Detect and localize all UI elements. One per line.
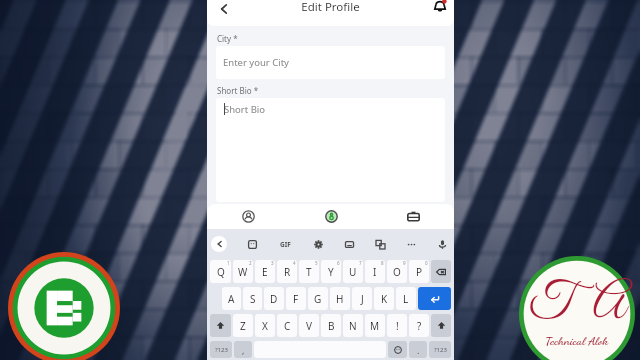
button[interactable]: C (277, 314, 297, 337)
button[interactable]: A (222, 287, 241, 310)
staticText: H (336, 292, 344, 306)
staticText: 5 (315, 260, 318, 266)
button[interactable]: Notifications (431, 0, 449, 15)
button[interactable]: Backspace (431, 260, 451, 283)
button[interactable]: Close toolbar (211, 236, 227, 252)
button[interactable]: U (343, 260, 363, 283)
button[interactable]: Back (214, 0, 232, 18)
staticText: 4 (293, 260, 296, 266)
button[interactable]: Enter your City (216, 46, 445, 79)
button[interactable]: Translate (373, 237, 387, 251)
staticText: Short Bio * (217, 85, 259, 96)
button[interactable]: Clipboard (342, 237, 356, 251)
staticText: 9 (403, 260, 406, 266)
button[interactable]: P (409, 260, 429, 283)
button[interactable]: I (365, 260, 385, 283)
button[interactable]: R (277, 260, 297, 283)
button[interactable]: X (255, 314, 275, 337)
button[interactable]: Emoji (388, 341, 407, 358)
staticText: E (262, 265, 268, 279)
staticText: 8 (381, 260, 384, 266)
button[interactable]: D (264, 287, 284, 310)
button[interactable]: ? (409, 314, 429, 337)
staticText: T (306, 265, 312, 279)
button[interactable]: ?123 (210, 341, 232, 358)
staticText: C (284, 319, 291, 333)
staticText: GIF (280, 240, 291, 249)
button[interactable]: N (343, 314, 363, 337)
button[interactable]: S (243, 287, 262, 310)
staticText: ? (417, 319, 422, 333)
button[interactable]: K (374, 287, 394, 310)
staticText: Y (328, 265, 334, 279)
button[interactable]: Home (290, 204, 372, 229)
staticText: 2 (249, 260, 252, 266)
staticText: L (403, 292, 409, 306)
staticText: J (361, 292, 364, 306)
staticText: W (238, 265, 248, 279)
button[interactable]: O (387, 260, 407, 283)
staticText: P (416, 265, 423, 279)
button[interactable]: . (409, 341, 427, 358)
staticText: 3 (271, 260, 274, 266)
button[interactable]: Jobs (372, 204, 454, 229)
staticText: Edit Profile (301, 0, 360, 15)
button[interactable]: ! (387, 314, 407, 337)
staticText: 0 (425, 260, 428, 266)
button[interactable]: ?123 (429, 341, 451, 358)
staticText: City * (217, 33, 238, 44)
staticText: F (293, 292, 299, 306)
staticText: Short Bio (224, 103, 266, 116)
button[interactable]: Profile (207, 204, 290, 229)
staticText: A (228, 292, 235, 306)
staticText: ?123 (215, 346, 228, 354)
button[interactable]: , (234, 341, 252, 358)
staticText: 1 (227, 260, 230, 266)
button[interactable]: T (299, 260, 319, 283)
staticText: ?123 (434, 346, 447, 354)
button[interactable]: G (308, 287, 328, 310)
button[interactable]: L (396, 287, 416, 310)
button[interactable]: Z (233, 314, 253, 337)
staticText: Z (240, 319, 246, 333)
button[interactable]: Q (210, 260, 231, 283)
button[interactable]: E (255, 260, 275, 283)
button[interactable]: Shift (431, 314, 451, 337)
button[interactable]: Shift (210, 314, 231, 337)
staticText: D (270, 292, 278, 306)
staticText: ! (396, 319, 399, 333)
staticText: B (328, 319, 335, 333)
staticText: , (242, 344, 245, 356)
button[interactable]: Voice input (435, 237, 449, 251)
button[interactable]: M (365, 314, 385, 337)
button[interactable]: Short Bio (216, 98, 445, 202)
button[interactable]: Settings (311, 237, 325, 251)
staticText: K (381, 292, 388, 306)
staticText: M (370, 319, 380, 333)
staticText: TA (529, 276, 626, 334)
staticText: Q (217, 265, 225, 279)
staticText: R (284, 265, 291, 279)
staticText: O (393, 265, 401, 279)
staticText: I (373, 265, 377, 279)
button[interactable]: F (286, 287, 306, 310)
button[interactable]: W (233, 260, 253, 283)
button[interactable]: V (299, 314, 319, 337)
staticText: Enter your City (223, 56, 289, 69)
button[interactable]: More (404, 237, 418, 251)
staticText: U (349, 265, 357, 279)
staticText: N (349, 319, 357, 333)
button[interactable]: Y (321, 260, 341, 283)
staticText: X (262, 319, 268, 333)
staticText: V (306, 319, 312, 333)
staticText: 6 (337, 260, 340, 266)
button[interactable]: H (330, 287, 350, 310)
staticText: . (417, 344, 420, 356)
button[interactable]: GIF (276, 237, 294, 251)
button[interactable]: J (352, 287, 372, 310)
button[interactable]: Stickers (245, 237, 259, 251)
button[interactable]: Enter (418, 287, 451, 310)
staticText: S (250, 292, 256, 306)
button[interactable]: B (321, 314, 341, 337)
